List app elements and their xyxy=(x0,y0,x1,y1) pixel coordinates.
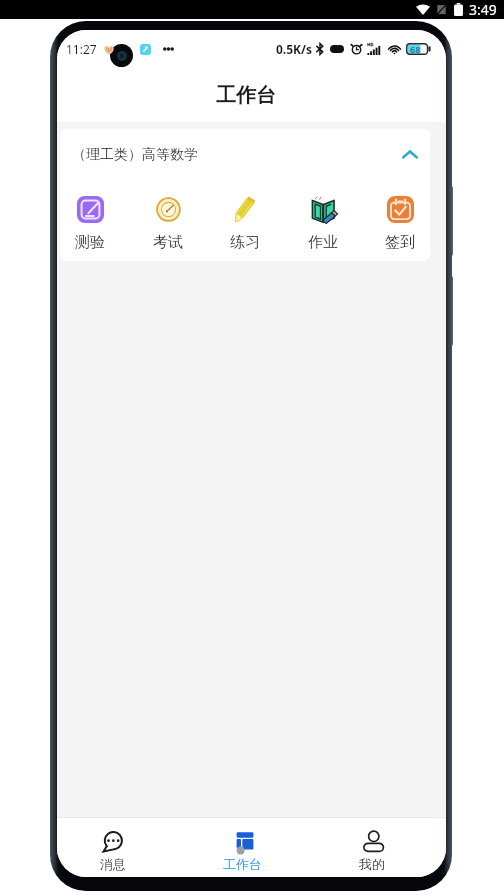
button[interactable]: 练习 xyxy=(227,196,263,252)
staticText: 练习 xyxy=(230,233,260,252)
button[interactable]: （理工类）高等数学 xyxy=(60,129,430,181)
staticText: 签到 xyxy=(385,233,415,252)
staticText: 11:27 xyxy=(66,41,97,57)
staticText: 作业 xyxy=(308,233,338,252)
staticText: 工作台 xyxy=(216,83,276,108)
staticText: 我的 xyxy=(359,856,385,872)
button[interactable]: 消息 xyxy=(57,818,177,877)
staticText: 消息 xyxy=(100,856,126,872)
staticText: 考试 xyxy=(153,233,183,252)
button[interactable]: 签到 xyxy=(382,196,418,252)
button[interactable]: 工作台 xyxy=(177,818,307,877)
button[interactable]: 作业 xyxy=(305,196,341,252)
button[interactable]: 测验 xyxy=(72,196,108,252)
staticText: 3:49 xyxy=(469,0,497,19)
staticText: 工作台 xyxy=(223,856,262,872)
staticText: （理工类）高等数学 xyxy=(72,146,198,164)
other: Collapse xyxy=(401,146,419,164)
staticText: 0.5K/s xyxy=(276,41,313,57)
staticText: 测验 xyxy=(75,233,105,252)
button[interactable]: 考试 xyxy=(150,196,186,252)
staticText: 68 xyxy=(410,43,421,55)
button[interactable]: 我的 xyxy=(307,818,437,877)
